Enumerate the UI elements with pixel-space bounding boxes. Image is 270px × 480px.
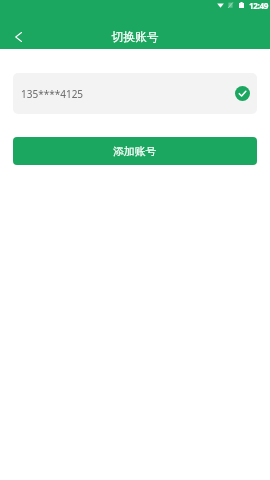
staticText: 添加账号 <box>113 145 157 159</box>
staticText: 12:49 <box>249 0 269 11</box>
staticText: 135****4125 <box>21 87 84 101</box>
staticText: 切换账号 <box>111 30 159 45</box>
button[interactable]: 135****4125 <box>13 73 257 114</box>
button[interactable]: Back <box>4 23 32 51</box>
button[interactable]: 添加账号 <box>13 137 257 165</box>
